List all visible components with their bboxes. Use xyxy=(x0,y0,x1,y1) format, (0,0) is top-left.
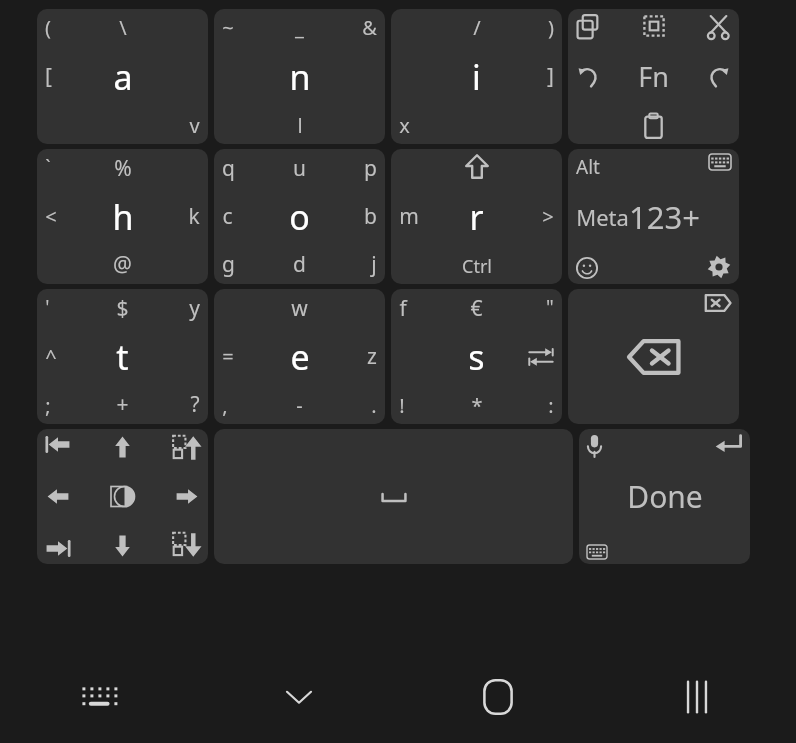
button[interactable]: r xyxy=(391,149,562,284)
staticText: w xyxy=(291,294,308,323)
staticText: < xyxy=(45,203,57,230)
staticText: i xyxy=(472,54,481,100)
staticText: t xyxy=(116,334,129,380)
staticText: @ xyxy=(113,250,132,279)
staticText: " xyxy=(546,294,554,320)
staticText: ) xyxy=(548,14,554,41)
button[interactable]: Meta 123 symbols xyxy=(568,149,739,284)
staticText: Alt xyxy=(576,154,600,180)
button[interactable]: t xyxy=(37,289,208,424)
staticText: Ctrl xyxy=(462,254,492,279)
staticText: s xyxy=(468,334,485,380)
staticText: \ xyxy=(119,14,127,41)
staticText: ] xyxy=(547,62,554,91)
staticText: y xyxy=(189,294,200,323)
button[interactable]: Navigation arrows xyxy=(37,429,208,564)
staticText: v xyxy=(189,112,200,139)
staticText: , xyxy=(222,392,228,419)
button[interactable]: h xyxy=(37,149,208,284)
staticText: _ xyxy=(295,14,304,41)
staticText: % xyxy=(114,154,132,183)
staticText: j xyxy=(371,250,377,279)
staticText: * xyxy=(471,392,483,419)
button[interactable]: Recents xyxy=(597,650,796,743)
staticText: n xyxy=(289,54,311,100)
button[interactable]: s xyxy=(391,289,562,424)
staticText: g xyxy=(222,250,235,279)
button[interactable]: Switch keyboard xyxy=(0,650,199,743)
staticText: f xyxy=(399,294,407,323)
button[interactable]: Hide keyboard xyxy=(199,650,398,743)
staticText: ! xyxy=(399,392,405,419)
button[interactable]: a xyxy=(37,9,208,144)
staticText: = xyxy=(222,343,234,370)
staticText: o xyxy=(289,194,310,240)
button[interactable]: n xyxy=(214,9,385,144)
staticText: ` xyxy=(45,154,51,180)
button[interactable]: Fn xyxy=(568,9,739,144)
staticText: + xyxy=(116,390,129,419)
staticText: c xyxy=(222,202,233,231)
staticText: d xyxy=(293,250,306,279)
staticText: e xyxy=(290,334,310,380)
staticText: ' xyxy=(45,294,50,320)
staticText: 123+ xyxy=(629,196,700,238)
staticText: . xyxy=(371,392,377,419)
button[interactable]: Done xyxy=(579,429,750,564)
staticText: h xyxy=(112,194,134,240)
staticText: x xyxy=(399,112,410,139)
staticText: ^ xyxy=(45,343,57,370)
button[interactable]: Home xyxy=(398,650,597,743)
button[interactable]: Space xyxy=(214,429,573,564)
staticText: : xyxy=(548,392,554,419)
staticText: k xyxy=(188,202,200,231)
staticText: ? xyxy=(190,390,200,419)
staticText: [ xyxy=(45,62,52,91)
staticText: l xyxy=(297,112,303,139)
staticText: z xyxy=(367,342,377,371)
staticText: r xyxy=(469,194,484,240)
staticText: q xyxy=(222,154,235,183)
staticText: m xyxy=(399,202,419,231)
staticText: ( xyxy=(45,14,51,41)
staticText: € xyxy=(470,294,483,323)
button[interactable]: o xyxy=(214,149,385,284)
staticText: - xyxy=(296,392,303,419)
staticText: & xyxy=(362,14,377,41)
staticText: ~ xyxy=(222,14,234,41)
staticText: a xyxy=(113,54,133,100)
staticText: Done xyxy=(627,476,703,517)
staticText: > xyxy=(542,203,554,230)
staticText: / xyxy=(473,14,481,41)
staticText: Meta xyxy=(576,202,629,232)
staticText: u xyxy=(293,154,306,183)
button[interactable]: i xyxy=(391,9,562,144)
button[interactable]: Backspace xyxy=(568,289,739,424)
staticText: $ xyxy=(116,294,129,323)
button[interactable]: e xyxy=(214,289,385,424)
staticText: ; xyxy=(45,392,51,419)
staticText: Fn xyxy=(638,58,669,95)
staticText: b xyxy=(364,202,377,231)
staticText: p xyxy=(364,154,377,183)
